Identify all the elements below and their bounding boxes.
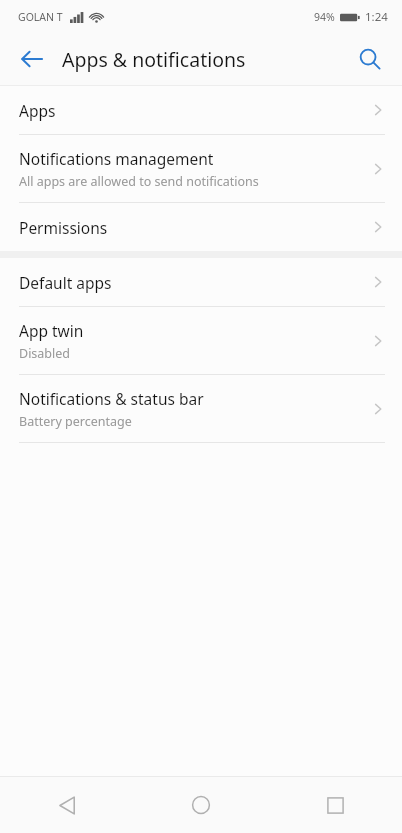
staticText: Permissions	[19, 217, 108, 238]
staticText: Apps & notifications	[62, 46, 246, 73]
staticText: 1:24	[365, 9, 388, 25]
button[interactable]: Permissions	[0, 203, 402, 251]
staticText: Battery percentage	[19, 413, 132, 430]
button[interactable]: Apps	[0, 86, 402, 134]
staticText: 94%	[314, 10, 335, 24]
button[interactable]: App twin	[0, 307, 402, 374]
button[interactable]: Search	[348, 37, 392, 81]
button[interactable]: Default apps	[0, 258, 402, 306]
staticText: Notifications & status bar	[19, 388, 204, 409]
button[interactable]: Recent apps	[268, 777, 402, 833]
button[interactable]: Back	[10, 37, 54, 81]
staticText: Disabled	[19, 345, 71, 362]
button[interactable]: Back	[0, 777, 134, 833]
staticText: GOLAN T	[18, 10, 63, 24]
button[interactable]: Notifications & status bar	[0, 375, 402, 442]
staticText: Notifications management	[19, 148, 214, 169]
staticText: App twin	[19, 320, 84, 341]
button[interactable]: Notifications management	[0, 135, 402, 202]
staticText: Apps	[19, 100, 56, 121]
staticText: Default apps	[19, 272, 112, 293]
staticText: All apps are allowed to send notificatio…	[19, 173, 259, 190]
button[interactable]: Home	[134, 777, 268, 833]
